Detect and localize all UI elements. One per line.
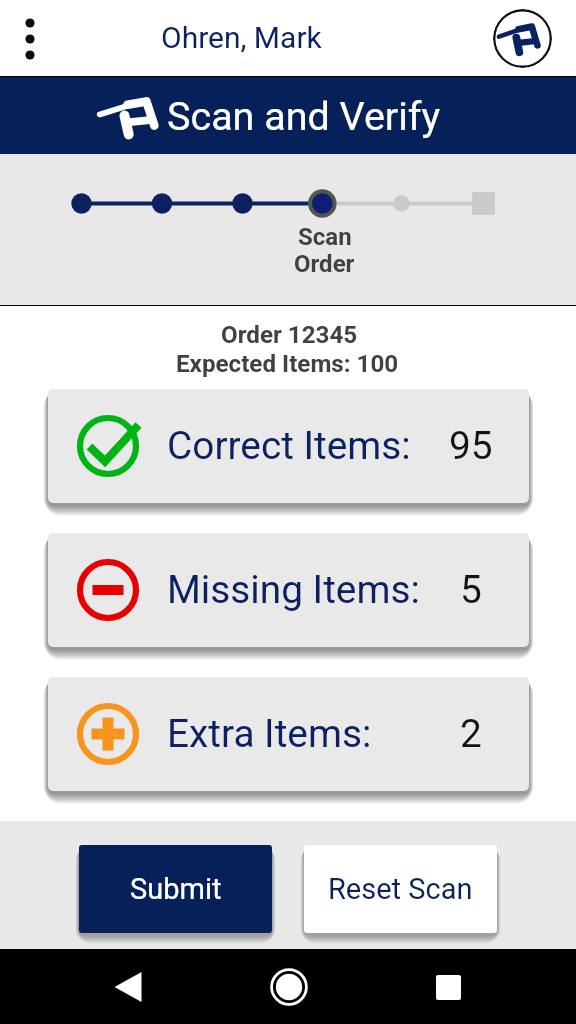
- staticText: Missing Items:: [167, 567, 420, 612]
- button[interactable]: Correct Items:: [48, 389, 529, 503]
- button[interactable]: Recents: [418, 957, 478, 1017]
- staticText: Order 12345: [221, 321, 358, 349]
- button[interactable]: Scanner: [493, 9, 552, 68]
- staticText: Scan and Verify: [167, 93, 441, 139]
- staticText: Reset Scan: [328, 872, 473, 906]
- staticText: Scan: [298, 223, 352, 251]
- staticText: Correct Items:: [167, 423, 411, 468]
- button[interactable]: Submit: [79, 845, 272, 933]
- staticText: 5: [460, 567, 482, 612]
- button[interactable]: Back: [98, 957, 158, 1017]
- button[interactable]: Extra Items:: [48, 677, 529, 791]
- staticText: Expected Items: 100: [176, 350, 399, 378]
- button[interactable]: Home: [259, 957, 319, 1017]
- staticText: Ohren, Mark: [161, 20, 322, 55]
- button[interactable]: Reset Scan: [304, 845, 497, 933]
- button[interactable]: Missing Items:: [48, 533, 529, 647]
- staticText: Extra Items:: [167, 711, 372, 756]
- staticText: 95: [449, 423, 493, 468]
- staticText: Submit: [130, 872, 222, 906]
- staticText: 2: [460, 711, 482, 756]
- staticText: Order: [294, 250, 355, 278]
- button[interactable]: More options: [8, 17, 52, 61]
